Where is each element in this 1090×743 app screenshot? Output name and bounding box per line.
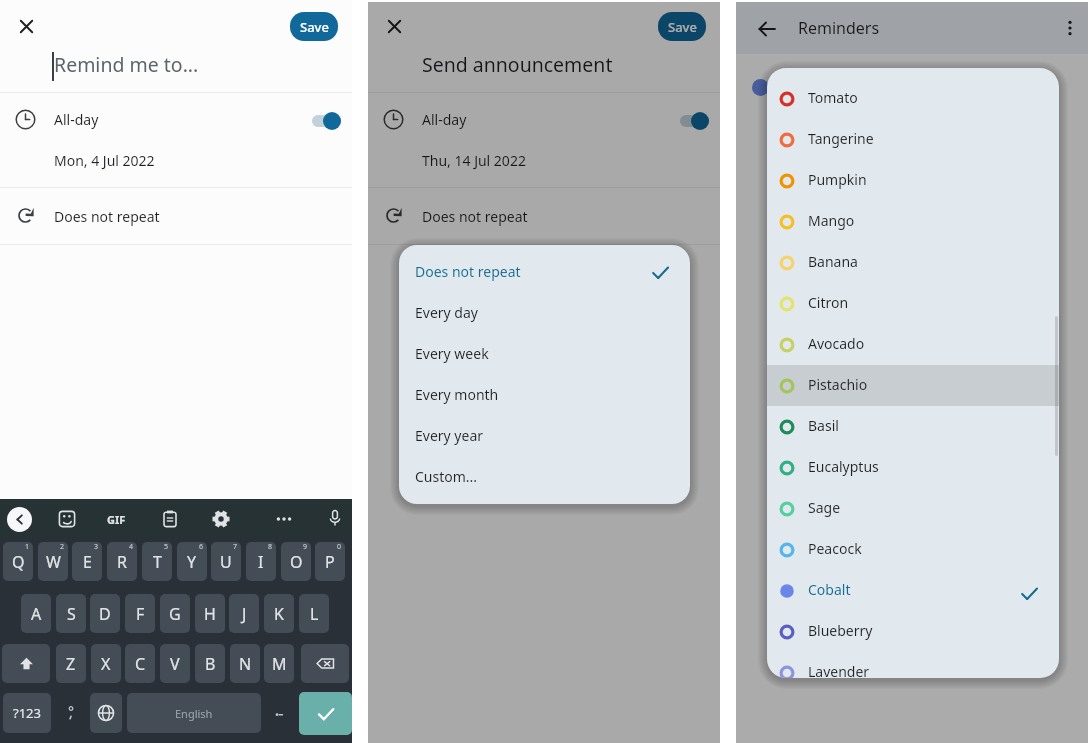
staticText: J bbox=[242, 603, 247, 625]
button[interactable]: E bbox=[72, 542, 102, 581]
button[interactable]: Back bbox=[7, 507, 32, 532]
button[interactable]: Close bbox=[15, 15, 38, 38]
button[interactable]: Voice input bbox=[325, 508, 345, 528]
staticText: Cobalt bbox=[808, 580, 851, 599]
staticText: P bbox=[325, 551, 335, 573]
staticText: 9 bbox=[303, 542, 308, 552]
button[interactable]: R bbox=[107, 542, 137, 581]
staticText: Send announcement bbox=[422, 51, 613, 78]
button[interactable]: More options bbox=[1059, 17, 1081, 39]
staticText: W bbox=[46, 551, 61, 573]
button[interactable]: N bbox=[230, 644, 260, 683]
button[interactable]: W bbox=[38, 542, 68, 581]
button[interactable]: Every week bbox=[399, 334, 690, 375]
button[interactable]: Period bbox=[264, 693, 294, 733]
button[interactable]: I bbox=[246, 542, 276, 581]
button[interactable]: Backspace bbox=[301, 644, 349, 683]
staticText: All-day bbox=[422, 110, 467, 129]
button[interactable]: L bbox=[299, 594, 329, 633]
button[interactable]: Settings bbox=[211, 509, 231, 529]
button[interactable]: All-day bbox=[368, 93, 720, 146]
button[interactable]: Shift bbox=[2, 644, 50, 683]
button[interactable]: Does not repeat bbox=[368, 188, 720, 244]
button[interactable]: Save bbox=[290, 12, 338, 41]
button[interactable]: B bbox=[195, 644, 225, 683]
button[interactable]: K bbox=[264, 594, 294, 633]
staticText: S bbox=[67, 603, 76, 625]
button[interactable]: Banana bbox=[767, 242, 1059, 283]
button[interactable]: F bbox=[125, 594, 155, 633]
button[interactable]: Blueberry bbox=[767, 611, 1059, 652]
button[interactable]: Save bbox=[658, 12, 706, 41]
button[interactable]: U bbox=[211, 542, 241, 581]
button[interactable]: P bbox=[315, 542, 345, 581]
staticText: Does not repeat bbox=[415, 262, 521, 281]
button[interactable]: Tangerine bbox=[767, 119, 1059, 160]
button[interactable]: Citron bbox=[767, 283, 1059, 324]
button[interactable]: Pistachio bbox=[767, 365, 1059, 406]
button[interactable]: C bbox=[125, 644, 155, 683]
button[interactable]: Basil bbox=[767, 406, 1059, 447]
button[interactable]: Stickers bbox=[57, 509, 77, 529]
button[interactable]: Tomato bbox=[767, 78, 1059, 119]
button[interactable]: G bbox=[160, 594, 190, 633]
button[interactable]: Language bbox=[90, 693, 122, 733]
staticText: Sage bbox=[808, 498, 841, 517]
button[interactable]: Mango bbox=[767, 201, 1059, 242]
button[interactable]: Avocado bbox=[767, 324, 1059, 365]
button[interactable]: H bbox=[195, 594, 225, 633]
button[interactable]: Thu, 14 Jul 2022 bbox=[368, 146, 720, 187]
button[interactable]: Mon, 4 Jul 2022 bbox=[0, 146, 352, 187]
button[interactable]: Custom... bbox=[399, 457, 690, 498]
button[interactable]: J bbox=[229, 594, 259, 633]
button[interactable]: Close bbox=[383, 15, 406, 38]
button[interactable]: Comma bbox=[55, 693, 87, 733]
button[interactable]: Pumpkin bbox=[767, 160, 1059, 201]
button[interactable]: Peacock bbox=[767, 529, 1059, 570]
staticText: X bbox=[101, 653, 111, 675]
staticText: Reminders bbox=[798, 17, 880, 39]
staticText: 5 bbox=[164, 542, 169, 552]
button[interactable]: Does not repeat bbox=[0, 188, 352, 244]
staticText: 3 bbox=[94, 542, 99, 552]
button[interactable]: Z bbox=[56, 644, 86, 683]
staticText: K bbox=[274, 603, 284, 625]
button[interactable] bbox=[736, 0, 1088, 743]
button[interactable]: Q bbox=[3, 542, 33, 581]
button[interactable]: More bbox=[274, 509, 294, 529]
button[interactable]: Space bbox=[127, 693, 261, 733]
button[interactable]: Every day bbox=[399, 293, 690, 334]
button[interactable]: X bbox=[91, 644, 121, 683]
button[interactable]: D bbox=[90, 594, 120, 633]
button[interactable]: S bbox=[56, 594, 86, 633]
button[interactable]: T bbox=[142, 542, 172, 581]
button[interactable]: M bbox=[264, 644, 294, 683]
button[interactable]: Every year bbox=[399, 416, 690, 457]
button[interactable]: GIF bbox=[107, 512, 126, 527]
staticText: R bbox=[117, 551, 127, 573]
button[interactable]: All-day toggle bbox=[680, 112, 709, 130]
staticText: A bbox=[31, 603, 42, 625]
staticText: Does not repeat bbox=[54, 207, 160, 226]
button[interactable]: Clipboard bbox=[160, 509, 180, 529]
staticText: Tangerine bbox=[808, 129, 874, 148]
button[interactable]: A bbox=[21, 594, 51, 633]
staticText: M bbox=[272, 653, 287, 675]
staticText: Every week bbox=[415, 344, 489, 363]
button[interactable]: V bbox=[160, 644, 190, 683]
button[interactable]: Every month bbox=[399, 375, 690, 416]
button[interactable]: Y bbox=[177, 542, 207, 581]
button[interactable] bbox=[368, 0, 720, 743]
button[interactable]: Does not repeat bbox=[399, 252, 690, 293]
button[interactable]: Sage bbox=[767, 488, 1059, 529]
button[interactable]: Enter bbox=[299, 692, 352, 735]
button[interactable]: Back bbox=[756, 18, 778, 40]
button[interactable]: Eucalyptus bbox=[767, 447, 1059, 488]
button[interactable]: Symbols bbox=[3, 693, 51, 733]
button[interactable]: All-day toggle bbox=[312, 112, 341, 130]
button[interactable]: All-day bbox=[0, 93, 352, 146]
button[interactable]: Cobalt bbox=[767, 570, 1059, 611]
staticText: 6 bbox=[199, 542, 204, 552]
button[interactable]: O bbox=[281, 542, 311, 581]
button[interactable]: Lavender bbox=[767, 652, 1059, 678]
